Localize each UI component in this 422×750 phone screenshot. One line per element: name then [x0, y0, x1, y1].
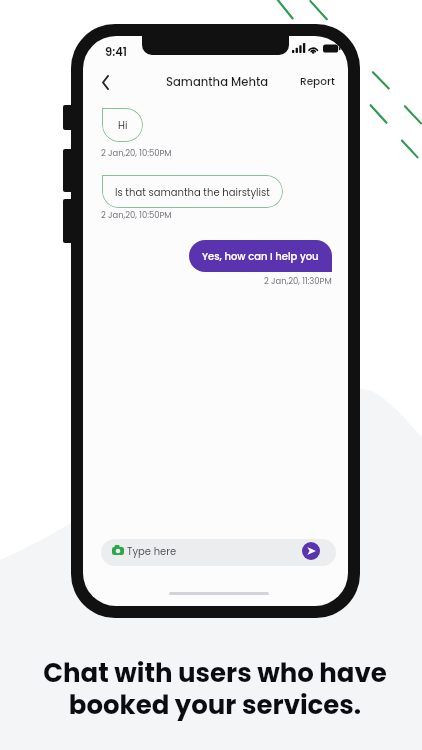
staticText: Hi [118, 118, 128, 132]
staticText: Chat with users who have booked your ser… [43, 655, 387, 723]
button[interactable]: Hi [102, 108, 143, 142]
button[interactable]: Back [96, 70, 116, 96]
button[interactable]: Type here [101, 539, 336, 566]
button[interactable]: Report [300, 74, 335, 89]
button[interactable]: Send [302, 542, 320, 560]
staticText: Samantha Mehta [166, 74, 269, 90]
staticText: 9:41 [105, 44, 127, 60]
staticText: 2 Jan,20, 10:50PM [101, 147, 172, 159]
button[interactable]: Is that samantha the hairstylist [102, 175, 283, 208]
button[interactable]: Yes, how can I help you [189, 240, 332, 272]
staticText: Type here [127, 544, 177, 558]
staticText: 2 Jan,20, 11:30PM [264, 275, 332, 287]
staticText: Report [300, 74, 335, 89]
staticText: Is that samantha the hairstylist [115, 185, 270, 199]
staticText: 2 Jan,20, 10:50PM [101, 209, 172, 221]
staticText: Yes, how can I help you [202, 249, 319, 263]
